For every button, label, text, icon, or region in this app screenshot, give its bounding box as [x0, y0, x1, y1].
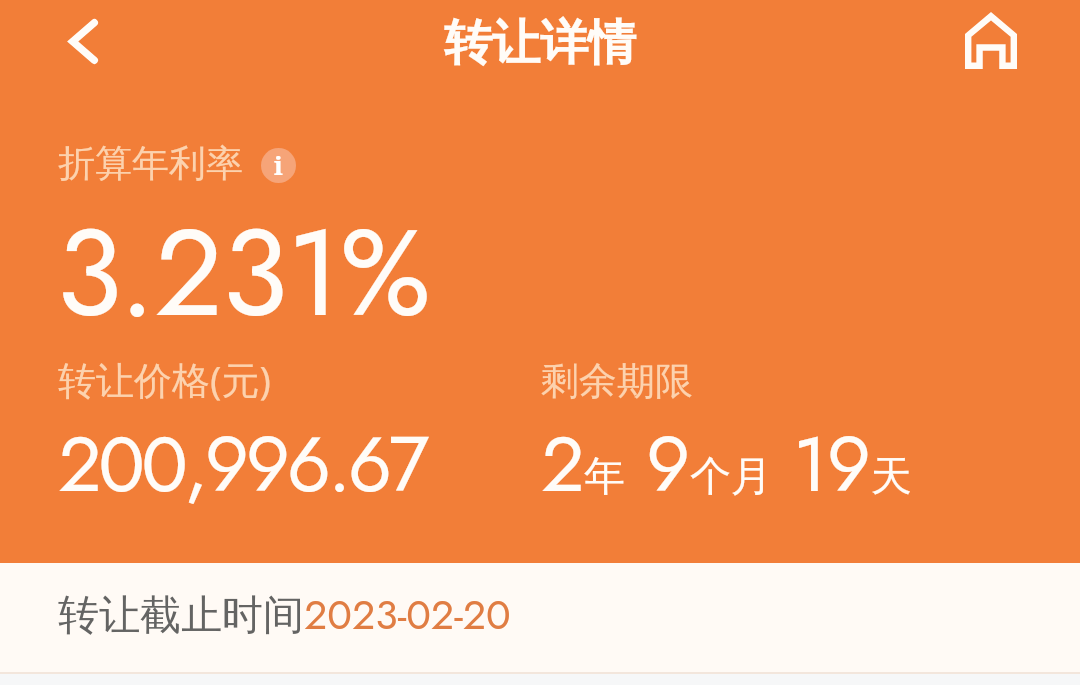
staticText: 转让详情: [444, 13, 636, 73]
staticText: 天: [871, 451, 912, 503]
button[interactable]: 转让截止时间2023-02-20: [0, 563, 1080, 672]
staticText: i: [274, 148, 283, 182]
staticText: 剩余期限: [541, 357, 693, 405]
staticText: 9: [646, 409, 690, 520]
staticText: 转让截止时间2023-02-20: [58, 585, 511, 644]
staticText: 3.231%: [56, 186, 430, 361]
button[interactable]: Back: [47, 5, 119, 77]
staticText: 19: [793, 409, 871, 520]
staticText: 转让价格(元): [58, 353, 271, 405]
staticText: 2: [541, 409, 584, 520]
button[interactable]: Info: [261, 148, 296, 183]
staticText: 折算年利率: [58, 140, 243, 187]
staticText: 年: [584, 451, 625, 503]
button[interactable]: Home: [955, 5, 1027, 77]
staticText: 个月: [690, 451, 772, 503]
staticText: 200,996.67: [58, 409, 426, 520]
